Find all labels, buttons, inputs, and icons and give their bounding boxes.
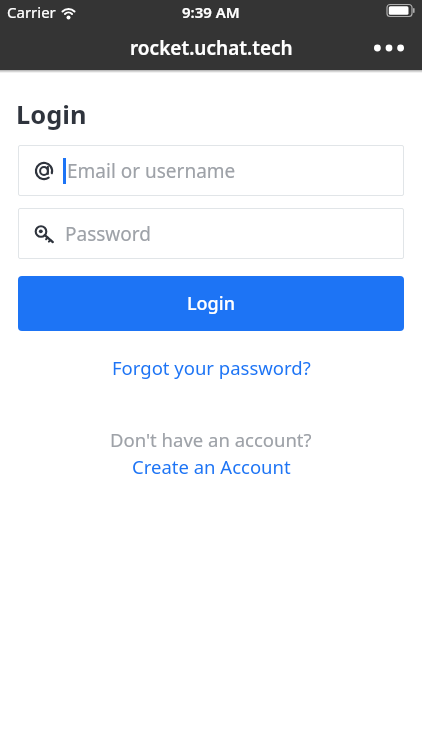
staticText: Create an Account — [132, 454, 291, 479]
staticText: Login — [187, 291, 235, 316]
button[interactable] — [372, 33, 406, 63]
staticText: 9:39 AM — [182, 2, 240, 22]
staticText: Login — [16, 97, 87, 132]
staticText: rocket.uchat.tech — [130, 35, 293, 61]
button[interactable]: Login — [18, 276, 404, 331]
staticText: Carrier — [7, 2, 56, 22]
button[interactable]: Forgot your password? — [0, 355, 422, 380]
staticText: Forgot your password? — [112, 355, 311, 380]
button[interactable]: Email or username — [18, 145, 404, 196]
staticText: Password — [65, 221, 151, 247]
staticText: Email or username — [67, 158, 236, 184]
button[interactable]: Create an Account — [0, 454, 422, 479]
staticText: Don't have an account? — [110, 427, 312, 452]
button[interactable]: Password — [18, 208, 404, 259]
